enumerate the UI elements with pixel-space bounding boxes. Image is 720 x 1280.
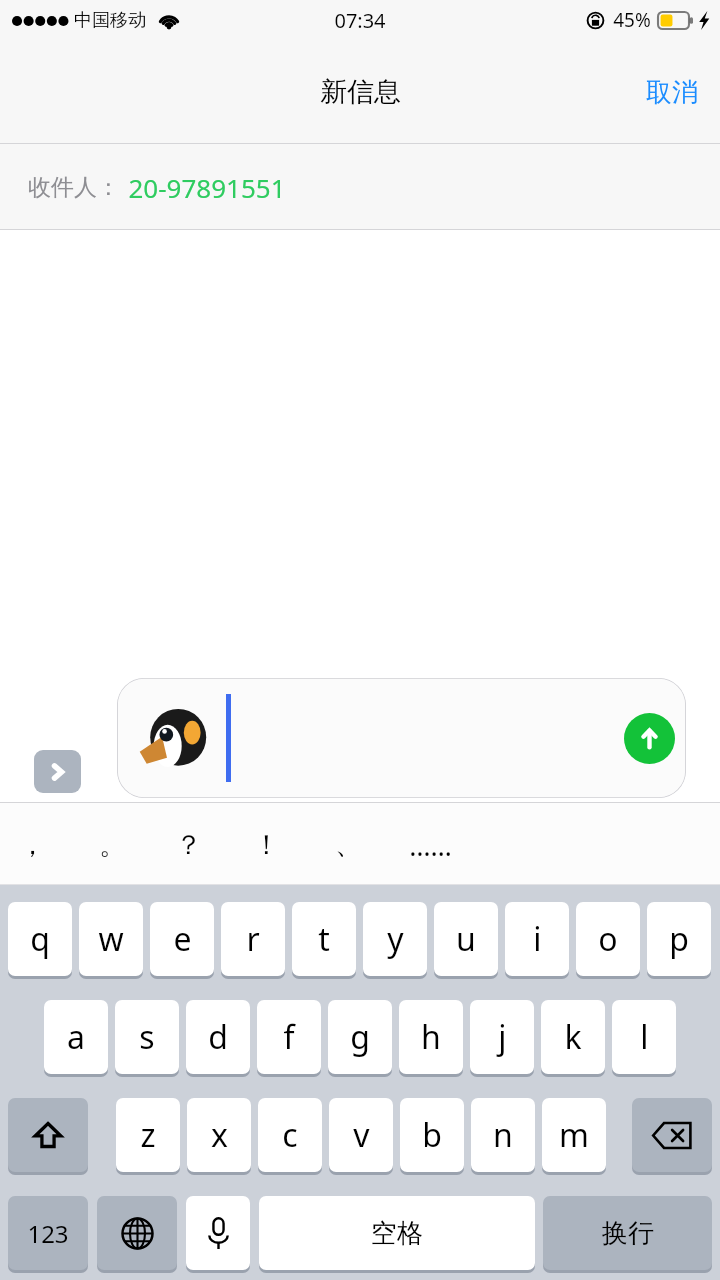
- staticText: x: [211, 1113, 228, 1157]
- staticText: 45%: [613, 7, 651, 33]
- button[interactable]: Send message: [117, 678, 686, 798]
- button[interactable]: y: [363, 902, 427, 976]
- button[interactable]: e: [150, 902, 214, 976]
- staticText: 。: [99, 828, 126, 862]
- button[interactable]: k: [541, 1000, 605, 1074]
- staticText: w: [98, 917, 124, 961]
- staticText: ！: [253, 828, 280, 862]
- staticText: u: [456, 917, 476, 961]
- button[interactable]: u: [434, 902, 498, 976]
- button[interactable]: ！: [238, 816, 294, 874]
- button[interactable]: Show more options: [34, 750, 81, 793]
- staticText: 中国移动: [74, 9, 146, 32]
- staticText: k: [564, 1015, 582, 1059]
- staticText: r: [246, 917, 260, 961]
- staticText: ……: [409, 827, 452, 864]
- staticText: 空格: [371, 1217, 423, 1250]
- button[interactable]: w: [79, 902, 143, 976]
- button[interactable]: Switch keyboard: [97, 1196, 177, 1270]
- staticText: y: [387, 917, 404, 961]
- button[interactable]: 、: [320, 816, 376, 874]
- button[interactable]: n: [471, 1098, 535, 1172]
- staticText: ？: [175, 828, 202, 862]
- staticText: v: [353, 1113, 370, 1157]
- staticText: f: [283, 1015, 295, 1059]
- button[interactable]: 取消: [624, 58, 720, 127]
- button[interactable]: z: [116, 1098, 180, 1172]
- staticText: j: [498, 1015, 507, 1059]
- button[interactable]: l: [612, 1000, 676, 1074]
- button[interactable]: Shift: [8, 1098, 88, 1172]
- button[interactable]: h: [399, 1000, 463, 1074]
- staticText: t: [318, 917, 330, 961]
- staticText: 20-97891551: [128, 170, 286, 205]
- button[interactable]: ？: [160, 816, 216, 874]
- button[interactable]: d: [186, 1000, 250, 1074]
- button[interactable]: Backspace: [632, 1098, 712, 1172]
- staticText: n: [493, 1113, 513, 1157]
- button[interactable]: v: [329, 1098, 393, 1172]
- staticText: g: [350, 1015, 370, 1059]
- button[interactable]: q: [8, 902, 72, 976]
- staticText: ，: [19, 828, 46, 862]
- staticText: 取消: [646, 76, 698, 109]
- staticText: a: [67, 1015, 85, 1059]
- button[interactable]: 收件人：: [0, 144, 720, 230]
- staticText: e: [173, 917, 192, 961]
- button[interactable]: c: [258, 1098, 322, 1172]
- button[interactable]: i: [505, 902, 569, 976]
- staticText: 新信息: [320, 75, 401, 109]
- staticText: s: [139, 1015, 155, 1059]
- button[interactable]: f: [257, 1000, 321, 1074]
- staticText: 收件人：: [28, 173, 120, 202]
- staticText: 123: [27, 1217, 69, 1250]
- button[interactable]: Send message: [624, 713, 675, 764]
- staticText: 换行: [602, 1217, 654, 1250]
- staticText: d: [208, 1015, 228, 1059]
- button[interactable]: g: [328, 1000, 392, 1074]
- staticText: p: [669, 917, 689, 961]
- button[interactable]: 换行: [543, 1196, 712, 1270]
- button[interactable]: Dictation: [186, 1196, 250, 1270]
- staticText: 07:34: [334, 7, 386, 34]
- button[interactable]: b: [400, 1098, 464, 1172]
- staticText: q: [30, 917, 50, 961]
- staticText: i: [533, 917, 542, 961]
- staticText: l: [640, 1015, 649, 1059]
- staticText: b: [422, 1113, 442, 1157]
- button[interactable]: r: [221, 902, 285, 976]
- staticText: o: [598, 917, 618, 961]
- button[interactable]: t: [292, 902, 356, 976]
- button[interactable]: j: [470, 1000, 534, 1074]
- button[interactable]: o: [576, 902, 640, 976]
- button[interactable]: ，: [4, 816, 60, 874]
- button[interactable]: a: [44, 1000, 108, 1074]
- button[interactable]: 空格: [259, 1196, 535, 1270]
- staticText: m: [559, 1113, 589, 1157]
- button[interactable]: x: [187, 1098, 251, 1172]
- staticText: c: [282, 1113, 298, 1157]
- button[interactable]: s: [115, 1000, 179, 1074]
- staticText: h: [421, 1015, 441, 1059]
- button[interactable]: 。: [84, 816, 140, 874]
- staticText: 、: [335, 828, 362, 862]
- staticText: z: [140, 1113, 156, 1157]
- button[interactable]: ……: [402, 816, 458, 874]
- button[interactable]: p: [647, 902, 711, 976]
- button[interactable]: 123: [8, 1196, 88, 1270]
- button[interactable]: m: [542, 1098, 606, 1172]
